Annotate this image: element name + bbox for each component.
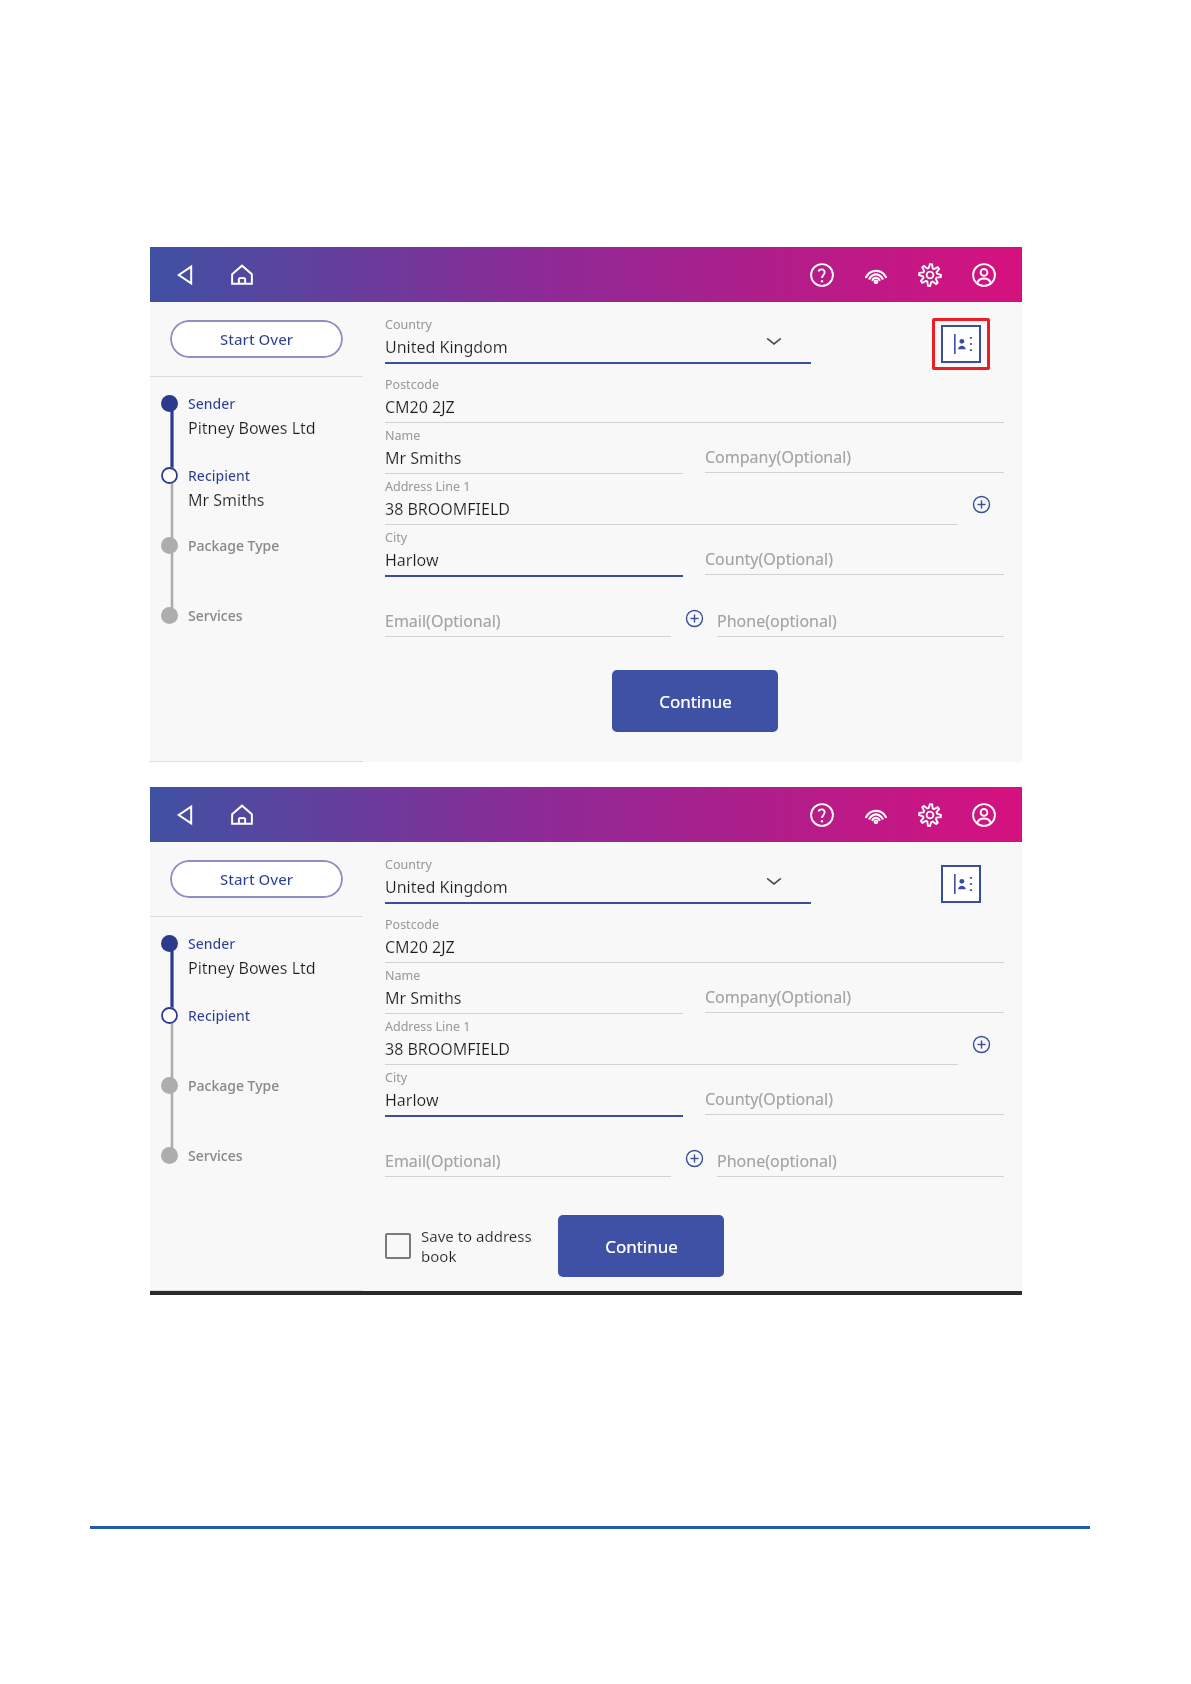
button[interactable]: Open address book — [932, 318, 990, 370]
button[interactable]: Services — [150, 1143, 363, 1167]
staticText: Pitney Bowes Ltd — [188, 417, 316, 439]
button[interactable]: Sender — [150, 931, 363, 955]
button[interactable]: Save to address book — [385, 1226, 532, 1266]
button[interactable]: Expand country list — [761, 868, 787, 894]
staticText: Phone(optional) — [717, 1150, 837, 1172]
staticText: Postcode — [385, 376, 439, 393]
staticText: City — [385, 529, 408, 546]
button[interactable]: Address Line 1 — [385, 478, 958, 525]
button[interactable]: Add email — [671, 599, 717, 637]
button[interactable]: Continue — [558, 1215, 724, 1277]
staticText: Harlow — [385, 549, 439, 571]
staticText: Harlow — [385, 1089, 439, 1111]
button[interactable]: Account — [966, 257, 1002, 293]
staticText: United Kingdom — [385, 336, 508, 358]
staticText: Save to address book — [421, 1226, 532, 1266]
button[interactable]: Start Over — [170, 860, 343, 898]
button[interactable]: Help — [804, 257, 840, 293]
button[interactable]: Email(Optional) — [385, 591, 671, 637]
button[interactable]: City — [385, 529, 683, 577]
button[interactable]: Name — [385, 967, 683, 1014]
staticText: Mr Smiths — [385, 987, 462, 1009]
staticText: Services — [188, 1146, 243, 1165]
button[interactable]: Postcode — [385, 916, 1004, 963]
button[interactable]: Home — [224, 797, 260, 833]
staticText: Address Line 1 — [385, 1018, 471, 1035]
button[interactable]: Address Line 1 — [385, 1018, 958, 1065]
button[interactable]: Start Over — [170, 320, 343, 358]
button[interactable]: Package Type — [150, 1073, 363, 1097]
button[interactable]: Back — [168, 797, 204, 833]
button[interactable]: Country — [385, 856, 811, 904]
button[interactable]: Open address book — [932, 858, 990, 910]
button[interactable]: Sender — [150, 391, 363, 415]
staticText: Sender — [188, 934, 236, 953]
button[interactable]: Wifi — [858, 257, 894, 293]
staticText: Address Line 1 — [385, 478, 471, 495]
staticText: CM20 2JZ — [385, 936, 455, 958]
button[interactable]: Help — [804, 797, 840, 833]
staticText: Phone(optional) — [717, 610, 837, 632]
staticText: Postcode — [385, 916, 439, 933]
button[interactable]: Add email — [671, 1139, 717, 1177]
staticText: Services — [188, 606, 243, 625]
button[interactable]: Name — [385, 427, 683, 474]
staticText: 38 BROOMFIELD — [385, 1038, 511, 1060]
staticText: Pitney Bowes Ltd — [188, 957, 316, 979]
button[interactable]: Phone(optional) — [717, 591, 1004, 637]
button[interactable]: Company(Optional) — [705, 967, 1004, 1013]
staticText: Package Type — [188, 536, 280, 555]
staticText: County(Optional) — [705, 548, 834, 570]
button[interactable]: Settings — [912, 257, 948, 293]
staticText: Continue — [605, 1235, 678, 1258]
staticText: Email(Optional) — [385, 610, 501, 632]
button[interactable]: Settings — [912, 797, 948, 833]
button[interactable]: Continue — [612, 670, 778, 732]
staticText: Recipient — [188, 466, 251, 485]
button[interactable]: Wifi — [858, 797, 894, 833]
staticText: Mr Smiths — [188, 489, 265, 511]
button[interactable]: Postcode — [385, 376, 1004, 423]
staticText: Recipient — [188, 1006, 251, 1025]
staticText: County(Optional) — [705, 1088, 834, 1110]
staticText: United Kingdom — [385, 876, 508, 898]
staticText: Sender — [188, 394, 236, 413]
button[interactable]: County(Optional) — [705, 1069, 1004, 1115]
button[interactable]: Email(Optional) — [385, 1131, 671, 1177]
staticText: Name — [385, 427, 421, 444]
button[interactable]: Add address line — [958, 483, 1004, 525]
staticText: Country — [385, 316, 432, 333]
staticText: Mr Smiths — [385, 447, 462, 469]
staticText: Name — [385, 967, 421, 984]
button[interactable]: Back — [168, 257, 204, 293]
staticText: CM20 2JZ — [385, 396, 455, 418]
button[interactable]: Home — [224, 257, 260, 293]
button[interactable]: Expand country list — [761, 328, 787, 354]
staticText: Company(Optional) — [705, 986, 852, 1008]
button[interactable]: Country — [385, 316, 811, 364]
button[interactable]: County(Optional) — [705, 529, 1004, 575]
button[interactable]: Company(Optional) — [705, 427, 1004, 473]
staticText: Continue — [659, 690, 732, 713]
button[interactable]: Add address line — [958, 1023, 1004, 1065]
button[interactable]: Package Type — [150, 533, 363, 557]
staticText: Company(Optional) — [705, 446, 852, 468]
staticText: 38 BROOMFIELD — [385, 498, 511, 520]
staticText: Country — [385, 856, 432, 873]
staticText: Start Over — [220, 329, 294, 349]
button[interactable]: City — [385, 1069, 683, 1117]
staticText: Start Over — [220, 869, 294, 889]
button[interactable]: Recipient — [150, 463, 363, 487]
staticText: Email(Optional) — [385, 1150, 501, 1172]
button[interactable]: Recipient — [150, 1003, 363, 1027]
button[interactable]: Phone(optional) — [717, 1131, 1004, 1177]
button[interactable]: Services — [150, 603, 363, 627]
staticText: City — [385, 1069, 408, 1086]
staticText: Package Type — [188, 1076, 280, 1095]
button[interactable]: Account — [966, 797, 1002, 833]
